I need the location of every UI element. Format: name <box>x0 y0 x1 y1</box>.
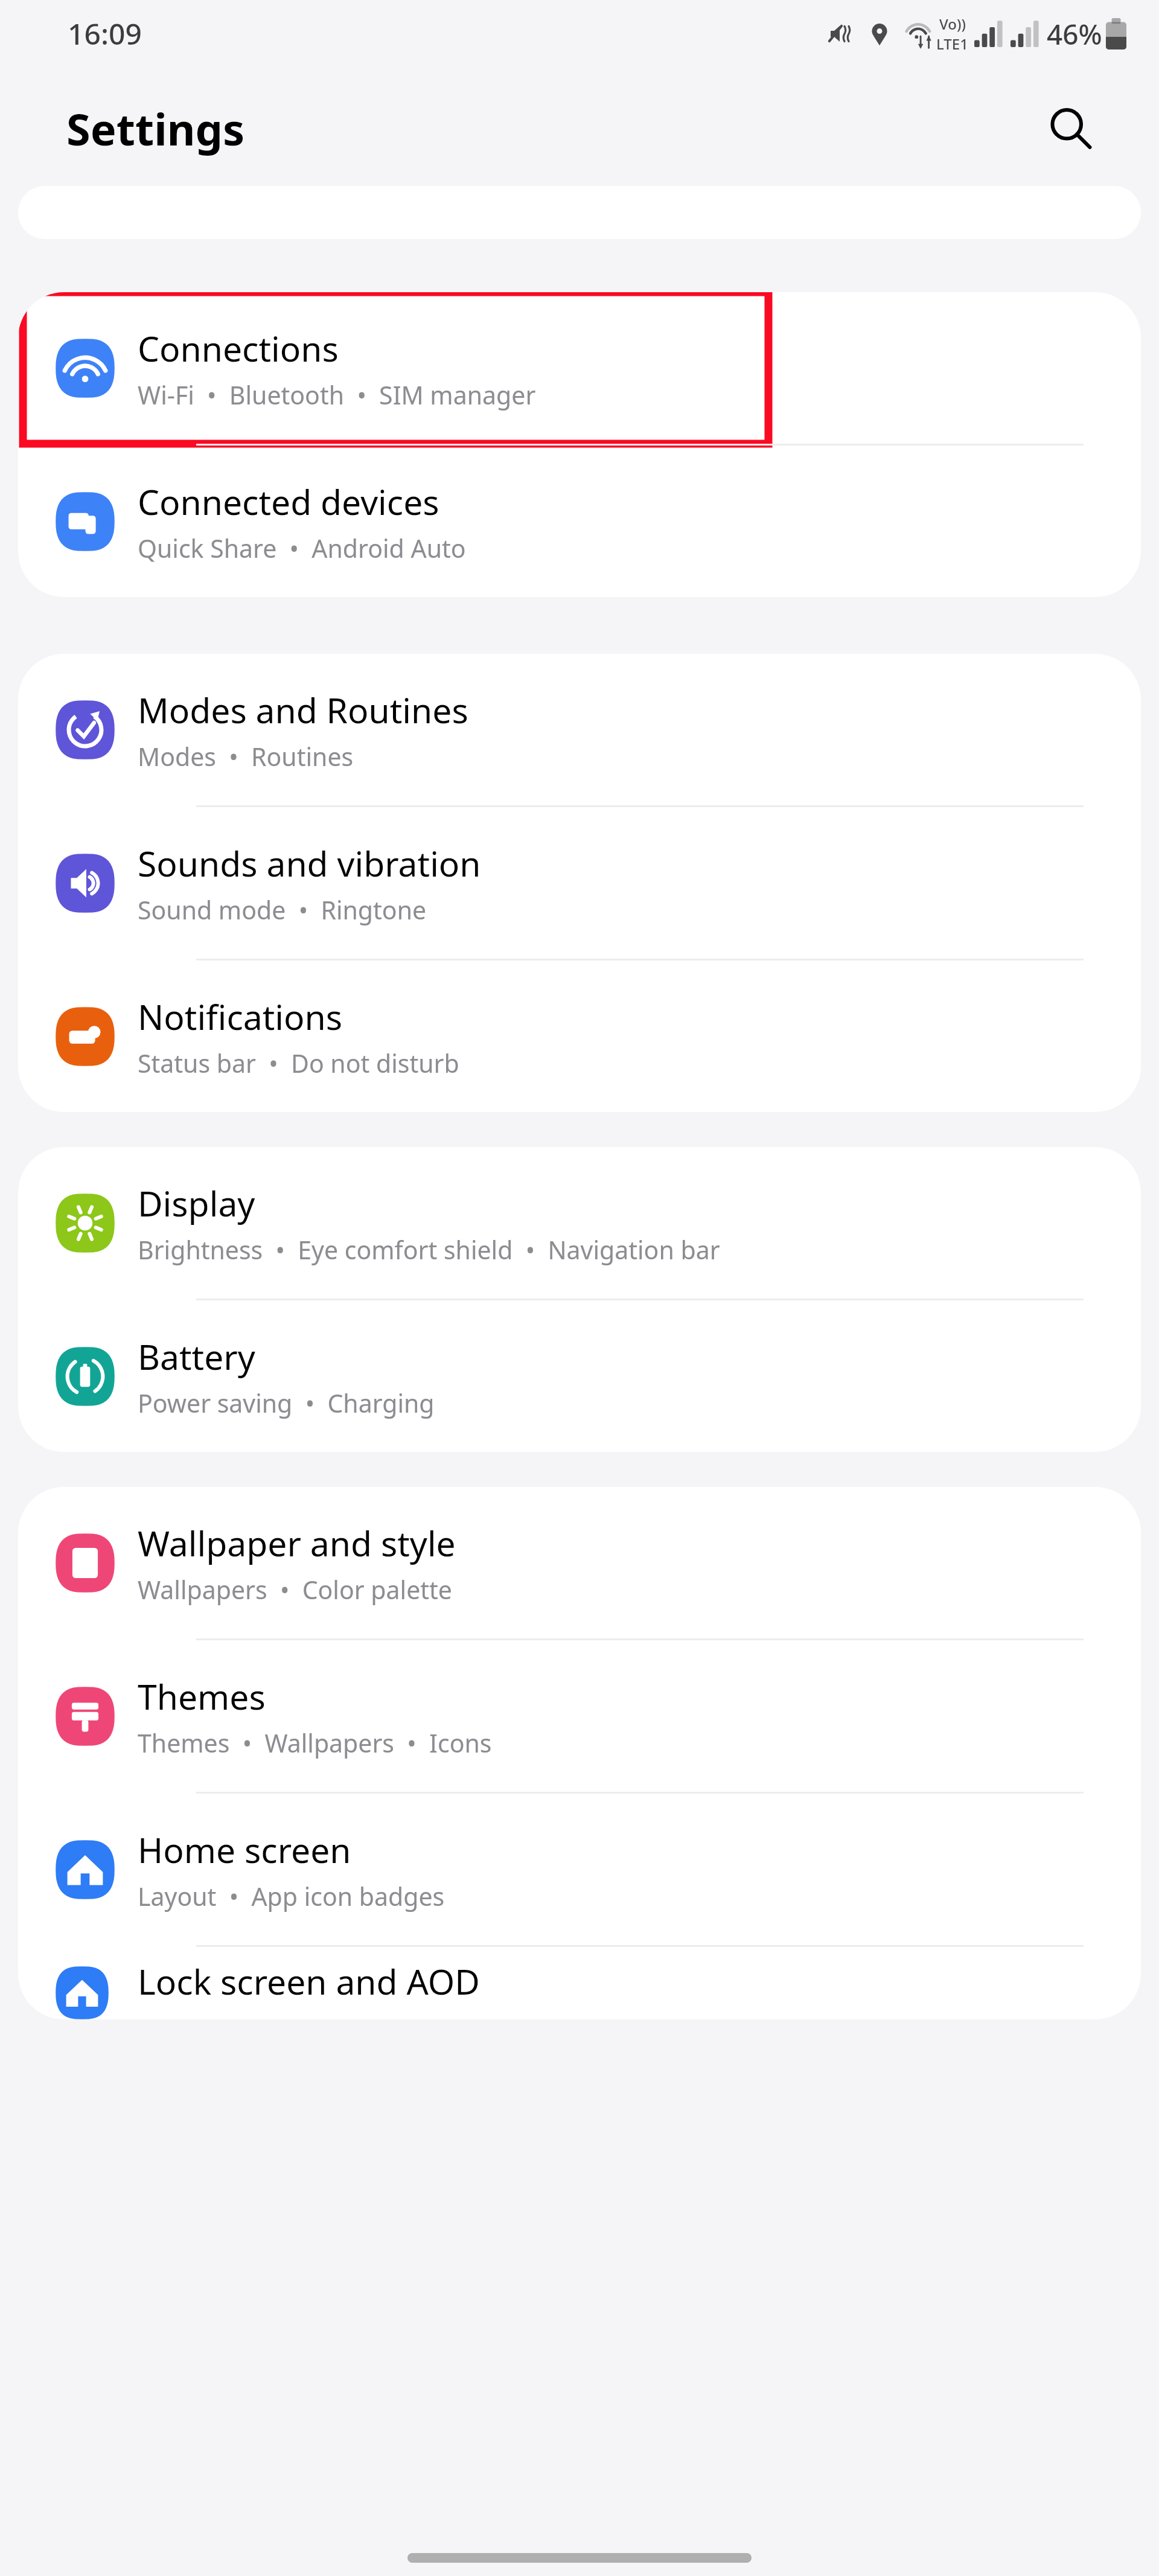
staticText: Notifications <box>138 993 343 1040</box>
staticText: 16:09 <box>68 14 142 53</box>
staticText: Display <box>138 1180 255 1227</box>
staticText: Wallpaper and style <box>138 1520 456 1567</box>
button[interactable]: Notifications <box>18 960 1141 1112</box>
button[interactable]: Modes and Routines <box>18 654 1141 805</box>
staticText: Wi-Fi • Bluetooth • SIM manager <box>138 378 536 412</box>
button[interactable]: Connections <box>18 292 1141 444</box>
staticText: Sound mode • Ringtone <box>138 893 427 927</box>
staticText: Wallpapers • Color palette <box>138 1573 452 1606</box>
staticText: Settings <box>66 99 245 158</box>
button[interactable]: Sounds and vibration <box>18 807 1141 959</box>
staticText: Sounds and vibration <box>138 840 481 887</box>
staticText: Brightness • Eye comfort shield • Naviga… <box>138 1233 720 1267</box>
staticText: Quick Share • Android Auto <box>138 531 466 565</box>
staticText: Status bar • Do not disturb <box>138 1046 459 1080</box>
staticText: Modes and Routines <box>138 686 468 733</box>
button[interactable]: Search <box>1037 95 1103 162</box>
staticText: Home screen <box>138 1826 351 1873</box>
staticText: Connections <box>138 325 339 372</box>
button[interactable]: Wallpaper and style <box>18 1487 1141 1638</box>
staticText: Modes • Routines <box>138 740 354 773</box>
staticText: Battery <box>138 1333 255 1380</box>
button[interactable]: Display <box>18 1147 1141 1299</box>
staticText: Themes <box>138 1673 266 1720</box>
staticText: Power saving • Charging <box>138 1386 435 1420</box>
button[interactable]: Themes <box>18 1640 1141 1792</box>
staticText: LTE1 <box>936 34 968 54</box>
staticText: Layout • App icon badges <box>138 1879 445 1913</box>
staticText: Connected devices <box>138 478 439 525</box>
staticText: Themes • Wallpapers • Icons <box>138 1726 492 1760</box>
button[interactable]: Connected devices <box>18 446 1141 597</box>
button[interactable]: Lock screen and AOD <box>18 1947 1141 2019</box>
staticText: 46% <box>1047 15 1102 53</box>
button[interactable]: Battery <box>18 1300 1141 1452</box>
staticText: Lock screen and AOD <box>138 1958 480 2005</box>
button[interactable]: Home screen <box>18 1794 1141 1945</box>
staticText: Vo)) <box>939 14 966 34</box>
